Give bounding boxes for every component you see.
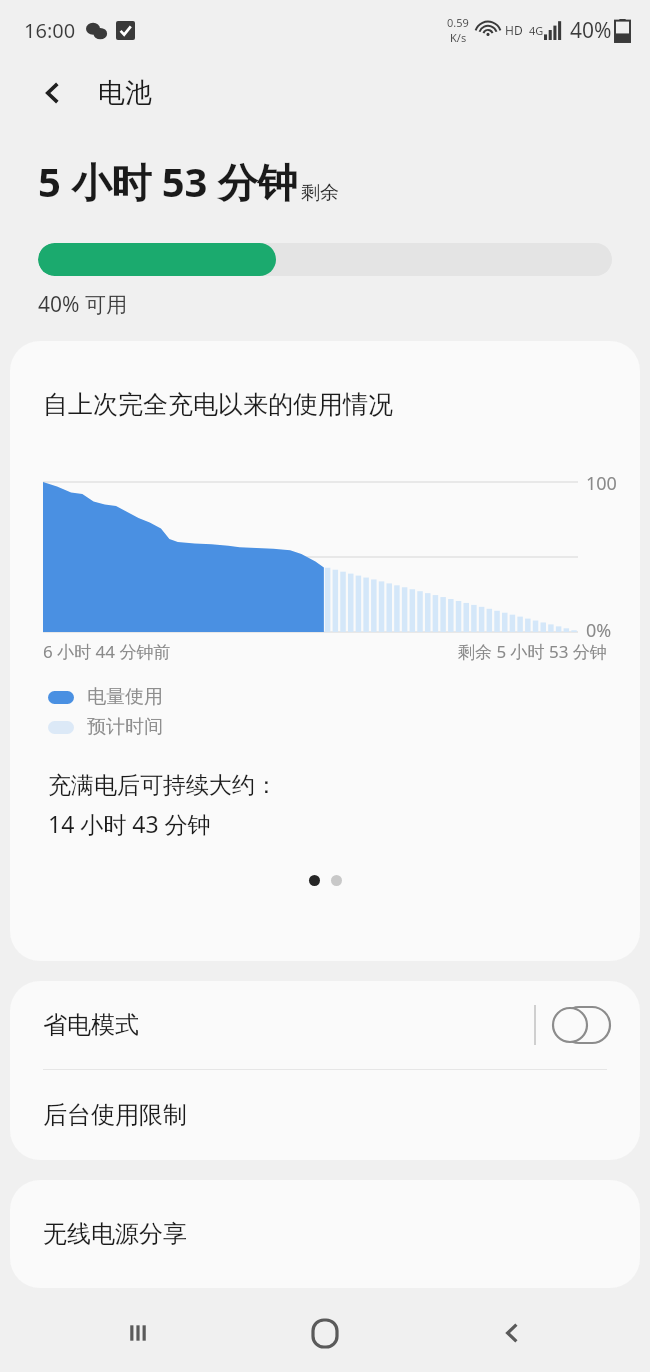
button[interactable]: Power saving toggle [552,1007,610,1043]
staticText: 预计时间 [87,715,163,739]
staticText: 剩余 5 小时 53 分钟 [458,640,607,663]
staticText: K/s [450,30,467,45]
button[interactable]: Back [30,70,76,116]
staticText: 14 小时 43 分钟 [48,808,211,839]
staticText: 后台使用限制 [43,1100,187,1130]
button[interactable]: 无线电源分享 [10,1180,640,1288]
staticText: 自上次完全充电以来的使用情况 [43,389,393,420]
staticText: 40% 可用 [38,290,127,319]
staticText: 16:00 [24,17,76,44]
button[interactable]: 后台使用限制 [10,1070,640,1160]
staticText: 5 小时 53 分钟 [38,154,298,209]
staticText: HD [505,22,523,38]
staticText: 电池 [98,76,152,110]
staticText: 100 [586,471,617,496]
staticText: 0.59 [447,15,469,30]
staticText: 4G [529,23,544,38]
button[interactable]: Home [299,1307,351,1359]
staticText: 剩余 [301,181,339,205]
button[interactable]: Back [486,1307,538,1359]
button[interactable]: 省电模式 [10,981,640,1069]
button[interactable]: Recents [112,1307,164,1359]
staticText: 6 小时 44 分钟前 [43,640,171,663]
staticText: 0% [586,618,612,643]
staticText: 无线电源分享 [43,1219,187,1249]
staticText: 40% [570,16,612,45]
staticText: 省电模式 [43,1010,139,1040]
staticText: 充满电后可持续大约： [48,771,278,800]
staticText: 电量使用 [87,685,163,709]
